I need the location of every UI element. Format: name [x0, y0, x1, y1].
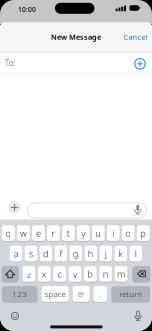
button[interactable] — [2, 266, 18, 282]
button[interactable]: x — [38, 266, 51, 282]
button[interactable]: f — [54, 246, 67, 261]
button[interactable]: h — [84, 246, 97, 261]
button[interactable]: c — [53, 266, 66, 282]
button[interactable]: b — [84, 266, 97, 282]
button[interactable] — [8, 201, 21, 214]
staticText: f — [59, 247, 62, 260]
staticText: o — [125, 227, 131, 239]
button[interactable] — [133, 266, 150, 282]
staticText: m — [117, 268, 125, 280]
staticText: e — [36, 227, 41, 239]
button[interactable]: n — [99, 266, 112, 282]
staticText: return — [119, 289, 142, 299]
staticText: Cancel — [123, 32, 147, 42]
staticText: j — [105, 247, 107, 260]
staticText: w — [20, 227, 27, 239]
staticText: p — [140, 227, 146, 239]
staticText: 10:00 — [18, 5, 36, 14]
staticText: c — [58, 268, 62, 280]
button[interactable]: a — [9, 246, 22, 261]
staticText: n — [103, 268, 109, 280]
button[interactable]: u — [92, 225, 105, 241]
staticText: h — [88, 247, 94, 260]
button[interactable] — [28, 203, 146, 218]
button[interactable]: d — [39, 246, 52, 261]
button[interactable]: q — [2, 225, 15, 241]
staticText: i — [112, 227, 114, 239]
staticText: r — [51, 227, 55, 239]
staticText: . — [99, 289, 101, 299]
staticText: a — [13, 247, 18, 260]
staticText: y — [81, 227, 85, 239]
button[interactable]: r — [47, 225, 60, 241]
button[interactable]: space — [41, 286, 69, 302]
button[interactable]: z — [22, 266, 35, 282]
button[interactable]: w — [17, 225, 30, 241]
button[interactable]: y — [77, 225, 90, 241]
staticText: t — [67, 227, 70, 239]
staticText: New Message — [51, 32, 101, 42]
button[interactable]: i — [107, 225, 120, 241]
button[interactable] — [11, 312, 19, 320]
button[interactable]: v — [68, 266, 81, 282]
button[interactable]: g — [69, 246, 82, 261]
button[interactable]: j — [99, 246, 112, 261]
button[interactable]: To: — [0, 53, 124, 73]
staticText: z — [27, 268, 31, 280]
button[interactable] — [132, 308, 144, 322]
staticText: k — [118, 247, 123, 260]
button[interactable]: o — [122, 225, 135, 241]
button[interactable] — [135, 59, 145, 69]
button[interactable]: e — [32, 225, 45, 241]
button[interactable]: k — [114, 246, 127, 261]
staticText: To: — [4, 57, 15, 69]
staticText: @ — [78, 290, 84, 298]
staticText: u — [95, 227, 101, 239]
button[interactable]: s — [24, 246, 37, 261]
button[interactable]: m — [114, 266, 127, 282]
button[interactable]: t — [62, 225, 75, 241]
staticText: b — [87, 268, 93, 280]
button[interactable]: Cancel — [122, 31, 148, 43]
staticText: 123 — [12, 289, 27, 299]
staticText: d — [43, 247, 49, 260]
staticText: q — [5, 227, 11, 239]
button[interactable]: p — [137, 225, 150, 241]
button[interactable]: @ — [72, 286, 90, 302]
button[interactable]: 123 — [2, 286, 37, 302]
staticText: g — [73, 247, 79, 260]
staticText: v — [73, 268, 77, 280]
staticText: x — [42, 268, 47, 280]
staticText: s — [29, 247, 33, 260]
staticText: l — [135, 247, 137, 260]
button[interactable]: l — [129, 246, 142, 261]
button[interactable]: . — [93, 286, 107, 302]
staticText: space — [45, 289, 66, 299]
button[interactable]: return — [112, 286, 150, 302]
